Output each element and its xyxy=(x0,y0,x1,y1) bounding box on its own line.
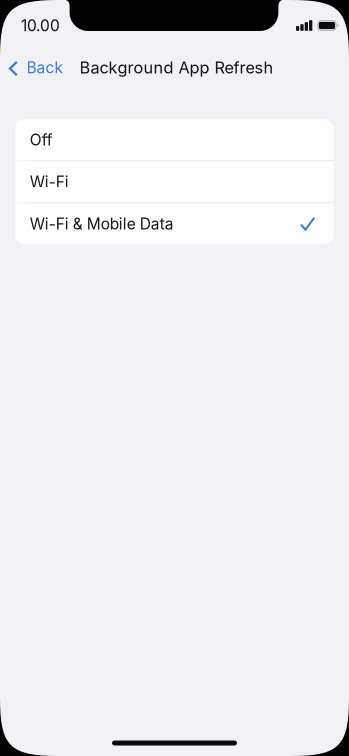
staticText: Off xyxy=(30,130,53,149)
staticText: Wi-Fi & Mobile Data xyxy=(30,214,174,233)
staticText: Wi-Fi xyxy=(30,172,69,191)
button[interactable]: Wi-Fi & Mobile Data xyxy=(15,203,334,244)
staticText: Background App Refresh xyxy=(79,58,273,77)
button[interactable]: Wi-Fi xyxy=(15,161,334,202)
button[interactable]: Off xyxy=(15,119,334,160)
staticText: 10.00 xyxy=(21,16,60,35)
button[interactable]: Back xyxy=(0,51,71,84)
staticText: Back xyxy=(27,58,63,77)
